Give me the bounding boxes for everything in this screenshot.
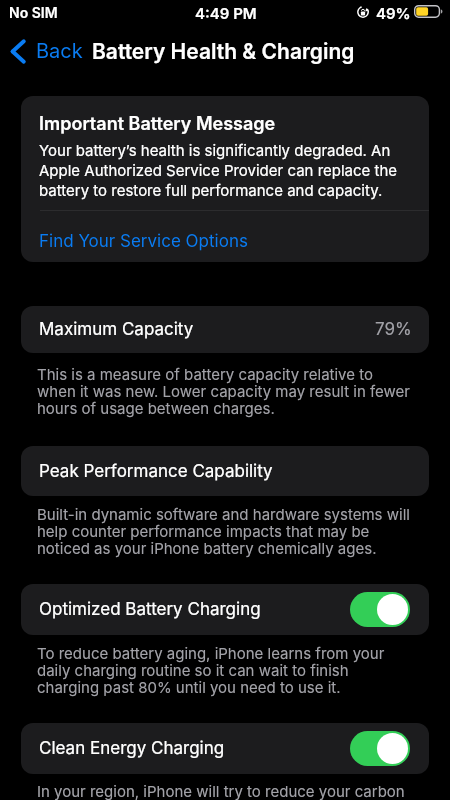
staticText: Your battery’s health is significantly d… — [39, 141, 404, 200]
staticText: Important Battery Message — [39, 113, 276, 135]
button[interactable]: Maximum Capacity — [21, 306, 429, 353]
staticText: To reduce battery aging, iPhone learns f… — [37, 644, 412, 696]
staticText: Clean Energy Charging — [39, 738, 225, 759]
staticText: Find Your Service Options — [39, 231, 248, 252]
staticText: Maximum Capacity — [39, 319, 194, 340]
staticText: 79% — [375, 319, 412, 340]
staticText: No SIM — [9, 4, 58, 21]
staticText: 49% — [376, 4, 411, 22]
staticText: Built-in dynamic software and hardware s… — [37, 505, 412, 557]
staticText: 4:49 PM — [195, 4, 257, 22]
staticText: Peak Performance Capability — [39, 461, 273, 482]
staticText: Back — [36, 39, 83, 63]
staticText: In your region, iPhone will try to reduc… — [37, 782, 412, 800]
button[interactable]: Optimized Battery Charging — [21, 584, 429, 635]
staticText: Optimized Battery Charging — [39, 599, 261, 620]
button[interactable]: Find Your Service Options — [21, 211, 429, 262]
other: Toggle Optimized Battery Charging — [350, 592, 410, 627]
staticText: Battery Health & Charging — [92, 39, 355, 64]
button[interactable]: Peak Performance Capability — [21, 446, 429, 496]
staticText: This is a measure of battery capacity re… — [37, 365, 412, 417]
other: Toggle Clean Energy Charging — [350, 731, 410, 766]
button[interactable]: Clean Energy Charging — [21, 723, 429, 774]
button[interactable]: Back — [5, 28, 88, 74]
